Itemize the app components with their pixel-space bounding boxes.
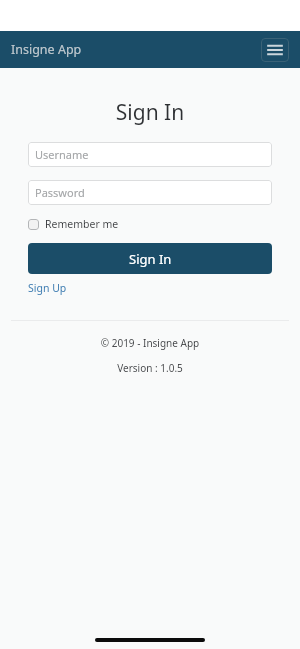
- button[interactable]: Sign In: [28, 243, 272, 274]
- staticText: Version : 1.0.5: [0, 361, 300, 375]
- staticText: Password: [35, 185, 85, 200]
- staticText: Sign Up: [28, 281, 67, 295]
- staticText: Remember me: [45, 217, 119, 231]
- button[interactable]: Username: [28, 142, 272, 167]
- button[interactable]: Menu: [261, 38, 289, 62]
- button[interactable]: Sign Up: [28, 281, 67, 295]
- staticText: Username: [35, 147, 89, 162]
- staticText: Insigne App: [11, 41, 82, 58]
- staticText: Sign In: [0, 98, 300, 127]
- button[interactable]: Password: [28, 180, 272, 205]
- button[interactable]: Remember me: [28, 216, 119, 232]
- staticText: © 2019 - Insigne App: [0, 336, 300, 350]
- staticText: Sign In: [129, 250, 172, 268]
